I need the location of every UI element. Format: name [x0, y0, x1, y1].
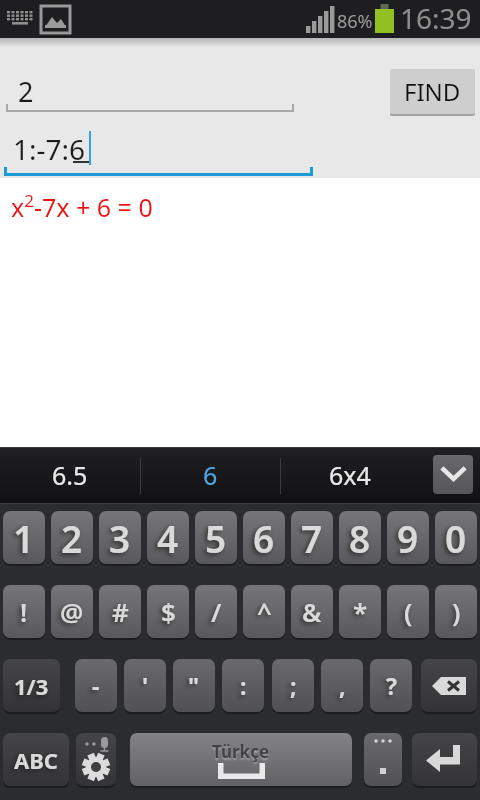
button[interactable]: ) — [435, 585, 477, 638]
button[interactable]: 4 — [147, 511, 189, 564]
staticText: 1:-7:6 — [13, 130, 86, 168]
button[interactable]: 9 — [387, 511, 429, 564]
button[interactable]: * — [339, 585, 381, 638]
staticText: 9 — [397, 513, 419, 563]
button[interactable]: ' — [124, 659, 166, 712]
staticText: 2 — [61, 513, 83, 563]
button[interactable] — [364, 733, 402, 786]
staticText: 6x4 — [329, 458, 371, 492]
staticText: 1 — [13, 513, 35, 563]
staticText: 7 — [301, 513, 323, 563]
button[interactable]: $ — [147, 585, 189, 638]
staticText: 6 — [203, 458, 218, 492]
button[interactable]: 5 — [195, 511, 237, 564]
button[interactable]: , — [321, 659, 363, 712]
button[interactable]: ( — [387, 585, 429, 638]
staticText: 0 — [445, 513, 467, 563]
staticText: " — [188, 670, 200, 701]
staticText: ? — [386, 670, 397, 701]
staticText: 6 — [253, 513, 275, 563]
staticText: ) — [452, 594, 461, 629]
button[interactable] — [433, 455, 473, 494]
staticText: x2-7x + 6 = 0 — [11, 189, 153, 224]
button[interactable]: ; — [272, 659, 314, 712]
button[interactable]: Türkçe — [130, 733, 352, 786]
staticText: 8 — [349, 513, 371, 563]
staticText: # — [112, 594, 129, 629]
button[interactable]: ^ — [243, 585, 285, 638]
button[interactable]: 2 — [51, 511, 93, 564]
staticText: 2 — [18, 73, 34, 110]
button[interactable]: 3 — [99, 511, 141, 564]
button[interactable] — [76, 733, 116, 786]
staticText: 5 — [205, 513, 227, 563]
button[interactable] — [421, 659, 477, 712]
button[interactable]: ABC — [3, 733, 69, 786]
button[interactable]: & — [291, 585, 333, 638]
button[interactable]: FIND — [390, 69, 475, 114]
staticText: $ — [161, 594, 176, 629]
staticText: ' — [142, 670, 149, 701]
button[interactable]: / — [195, 585, 237, 638]
button[interactable]: 6x4 — [280, 447, 420, 503]
button[interactable]: 6 — [140, 447, 280, 503]
staticText: 16:39 — [400, 0, 472, 37]
button[interactable] — [412, 733, 477, 786]
button[interactable]: : — [222, 659, 264, 712]
staticText: FIND — [404, 75, 461, 108]
button[interactable]: 6 — [243, 511, 285, 564]
staticText: / — [211, 594, 222, 629]
button[interactable]: @ — [51, 585, 93, 638]
button[interactable]: " — [173, 659, 215, 712]
staticText: 3 — [109, 513, 131, 563]
staticText: @ — [60, 594, 84, 629]
staticText: 1/3 — [14, 671, 49, 701]
button[interactable]: ? — [370, 659, 412, 712]
staticText: ! — [20, 594, 28, 629]
button[interactable]: - — [75, 659, 117, 712]
staticText: ABC — [14, 745, 58, 775]
button[interactable]: 6.5 — [0, 447, 140, 503]
button[interactable]: 1 — [3, 511, 45, 564]
button[interactable]: ! — [3, 585, 45, 638]
button[interactable]: # — [99, 585, 141, 638]
staticText: , — [339, 670, 346, 701]
button[interactable]: 1/3 — [3, 659, 60, 712]
staticText: - — [92, 670, 100, 701]
staticText: * — [353, 594, 368, 629]
staticText: 4 — [157, 513, 179, 563]
button[interactable]: 0 — [435, 511, 477, 564]
staticText: & — [302, 594, 322, 629]
staticText: : — [240, 670, 247, 701]
staticText: Türkçe — [212, 740, 270, 763]
staticText: ^ — [257, 594, 272, 629]
staticText: ; — [290, 670, 297, 701]
staticText: 86% — [337, 9, 373, 34]
button[interactable]: 7 — [291, 511, 333, 564]
button[interactable]: 8 — [339, 511, 381, 564]
staticText: ( — [404, 594, 413, 629]
staticText: 6.5 — [52, 458, 88, 492]
